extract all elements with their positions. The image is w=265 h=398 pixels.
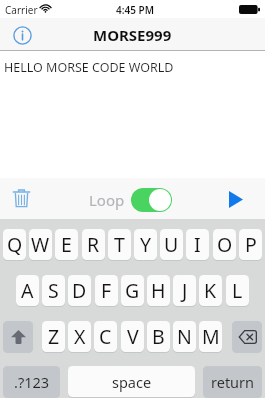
button[interactable]: D [68,275,91,306]
button[interactable]: Play [224,187,248,211]
button[interactable]: H [147,275,170,306]
button[interactable]: Q [3,229,26,260]
staticText: P [245,231,257,258]
staticText: space [112,372,152,392]
staticText: B [152,323,165,350]
button[interactable]: Info [9,22,36,49]
button[interactable]: W [29,229,52,260]
staticText: K [204,277,217,304]
button[interactable]: Delete [9,186,34,211]
staticText: S [48,277,59,304]
button[interactable]: J [173,275,196,306]
button[interactable]: B [147,321,170,352]
button[interactable]: R [82,229,105,260]
staticText: M [202,323,220,350]
button[interactable]: A [16,275,39,306]
staticText: MORSE999 [93,25,172,45]
staticText: Z [48,323,60,350]
button[interactable]: V [121,321,144,352]
button[interactable]: C [94,321,117,352]
staticText: HELLO MORSE CODE WORLD [4,59,174,76]
button[interactable]: L [226,275,249,306]
staticText: V [127,323,139,350]
staticText: C [99,323,112,350]
button[interactable]: Z [42,321,65,352]
button[interactable]: S [42,275,65,306]
staticText: N [177,323,192,350]
staticText: T [114,231,125,258]
staticText: O [217,231,233,258]
staticText: R [87,231,100,258]
staticText: D [72,277,87,304]
staticText: Q [7,231,23,258]
staticText: F [101,277,112,304]
button[interactable]: return [203,366,262,397]
button[interactable]: Key [3,321,33,352]
button[interactable]: F [95,275,118,306]
staticText: Carrier [5,3,38,17]
button[interactable]: G [121,275,144,306]
staticText: U [164,231,179,258]
button[interactable]: space [68,366,195,397]
button[interactable]: N [173,321,196,352]
button[interactable]: M [199,321,222,352]
staticText: .?123 [14,372,50,392]
button[interactable]: Loop toggle [131,188,172,212]
staticText: H [151,277,166,304]
button[interactable]: P [239,229,262,260]
staticText: A [21,277,34,304]
button[interactable]: E [55,229,78,260]
staticText: W [31,231,50,258]
staticText: L [232,277,243,304]
staticText: Y [140,231,152,258]
button[interactable]: Key [232,321,262,352]
button[interactable]: X [68,321,91,352]
staticText: 4:45 PM [116,3,154,17]
staticText: X [74,323,86,350]
button[interactable]: U [160,229,183,260]
button[interactable]: .?123 [3,366,60,397]
staticText: J [182,277,188,304]
staticText: Loop [89,190,125,210]
staticText: I [194,231,201,258]
button[interactable]: T [108,229,131,260]
staticText: E [61,231,72,258]
button[interactable]: Y [134,229,157,260]
button[interactable]: K [199,275,222,306]
staticText: G [125,277,140,304]
button[interactable]: I [186,229,209,260]
staticText: return [211,372,255,392]
button[interactable]: O [213,229,236,260]
